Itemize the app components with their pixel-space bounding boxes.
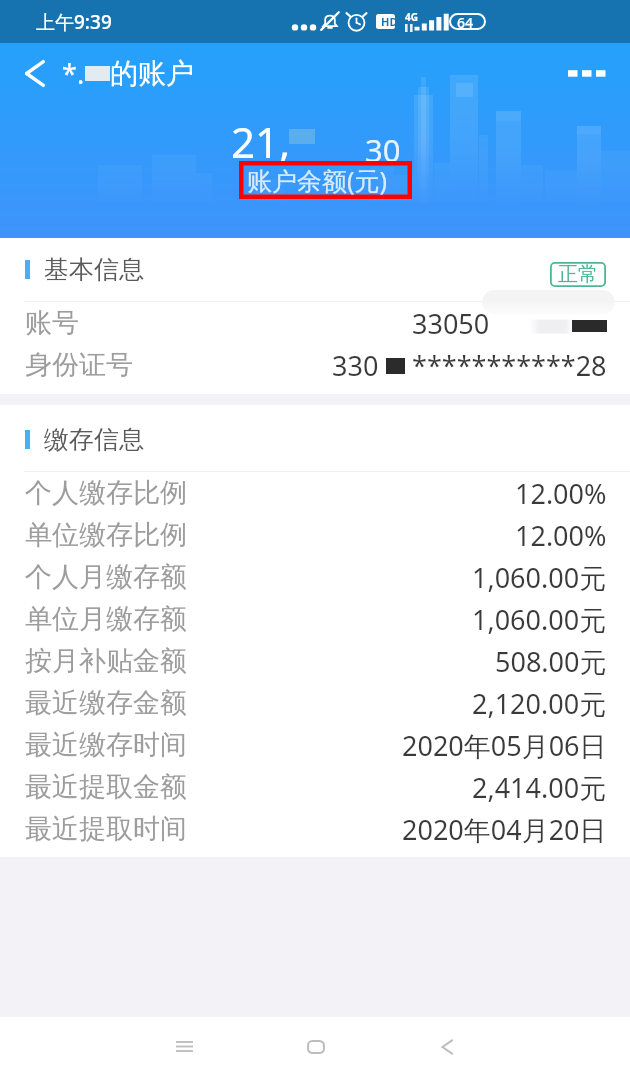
button[interactable]: 身份证号 [0, 344, 630, 386]
staticText: 个人月缴存额 [25, 560, 187, 594]
button[interactable]: Recent apps [154, 1017, 214, 1076]
button[interactable]: 单位缴存比例 [0, 514, 630, 556]
button[interactable]: Back [11, 49, 59, 97]
staticText: ***********28 [412, 347, 607, 384]
button[interactable]: Back [417, 1017, 477, 1076]
staticText: 2020年05月06日 [402, 727, 607, 764]
staticText: 2,414.00元 [472, 769, 607, 806]
staticText: 基本信息 [44, 254, 144, 285]
staticText: HD [381, 14, 398, 29]
staticText: 2020年04月20日 [402, 811, 607, 848]
button[interactable]: 正常 [550, 262, 606, 287]
staticText: 2,120.00元 [472, 685, 607, 722]
staticText: 1,060.00元 [472, 559, 607, 596]
staticText: 21, [231, 113, 291, 170]
staticText: 最近缴存时间 [25, 728, 187, 762]
staticText: 1,060.00元 [472, 601, 607, 638]
button[interactable]: 单位月缴存额 [0, 598, 630, 640]
button[interactable]: 个人月缴存额 [0, 556, 630, 598]
button[interactable]: 按月补贴金额 [0, 640, 630, 682]
staticText: 64 [457, 13, 474, 32]
staticText: 508.00元 [495, 643, 607, 680]
staticText: *. [62, 55, 85, 92]
staticText: 最近提取时间 [25, 812, 187, 846]
staticText: 单位月缴存额 [25, 602, 187, 636]
staticText: 33050 [412, 305, 490, 342]
button[interactable]: 最近提取金额 [0, 766, 630, 808]
button[interactable]: More options [562, 49, 610, 97]
button[interactable]: 最近提取时间 [0, 808, 630, 850]
staticText: 正常 [558, 262, 598, 287]
staticText: 身份证号 [25, 348, 133, 382]
staticText: 330 [332, 347, 379, 384]
button[interactable]: 最近缴存金额 [0, 682, 630, 724]
staticText: 的账户 [110, 56, 194, 91]
staticText: 上午9:39 [36, 9, 112, 35]
button[interactable]: 最近缴存时间 [0, 724, 630, 766]
button[interactable]: 账号 [0, 302, 630, 344]
staticText: 12.00% [515, 475, 607, 512]
staticText: 个人缴存比例 [25, 476, 187, 510]
button[interactable]: 个人缴存比例 [0, 472, 630, 514]
staticText: 最近提取金额 [25, 770, 187, 804]
staticText: 缴存信息 [44, 424, 144, 455]
staticText: 4G [405, 10, 418, 24]
staticText: 按月补贴金额 [25, 644, 187, 678]
staticText: 12.00% [515, 517, 607, 554]
staticText: 账户余额(元) [247, 163, 388, 197]
button[interactable]: Home [286, 1017, 346, 1076]
staticText: 单位缴存比例 [25, 518, 187, 552]
staticText: 账号 [25, 306, 79, 340]
staticText: 30 [365, 129, 401, 171]
staticText: 最近缴存金额 [25, 686, 187, 720]
